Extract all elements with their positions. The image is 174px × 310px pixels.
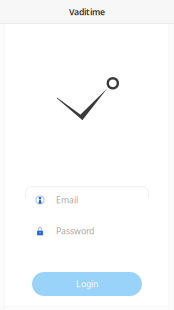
staticText: Password (56, 225, 94, 237)
staticText: Email (56, 194, 78, 206)
button[interactable]: Login (32, 272, 142, 296)
button[interactable]: Email (25, 184, 149, 215)
staticText: Vaditime (69, 6, 105, 18)
button[interactable]: Password (25, 215, 149, 246)
staticText: Login (76, 278, 98, 290)
